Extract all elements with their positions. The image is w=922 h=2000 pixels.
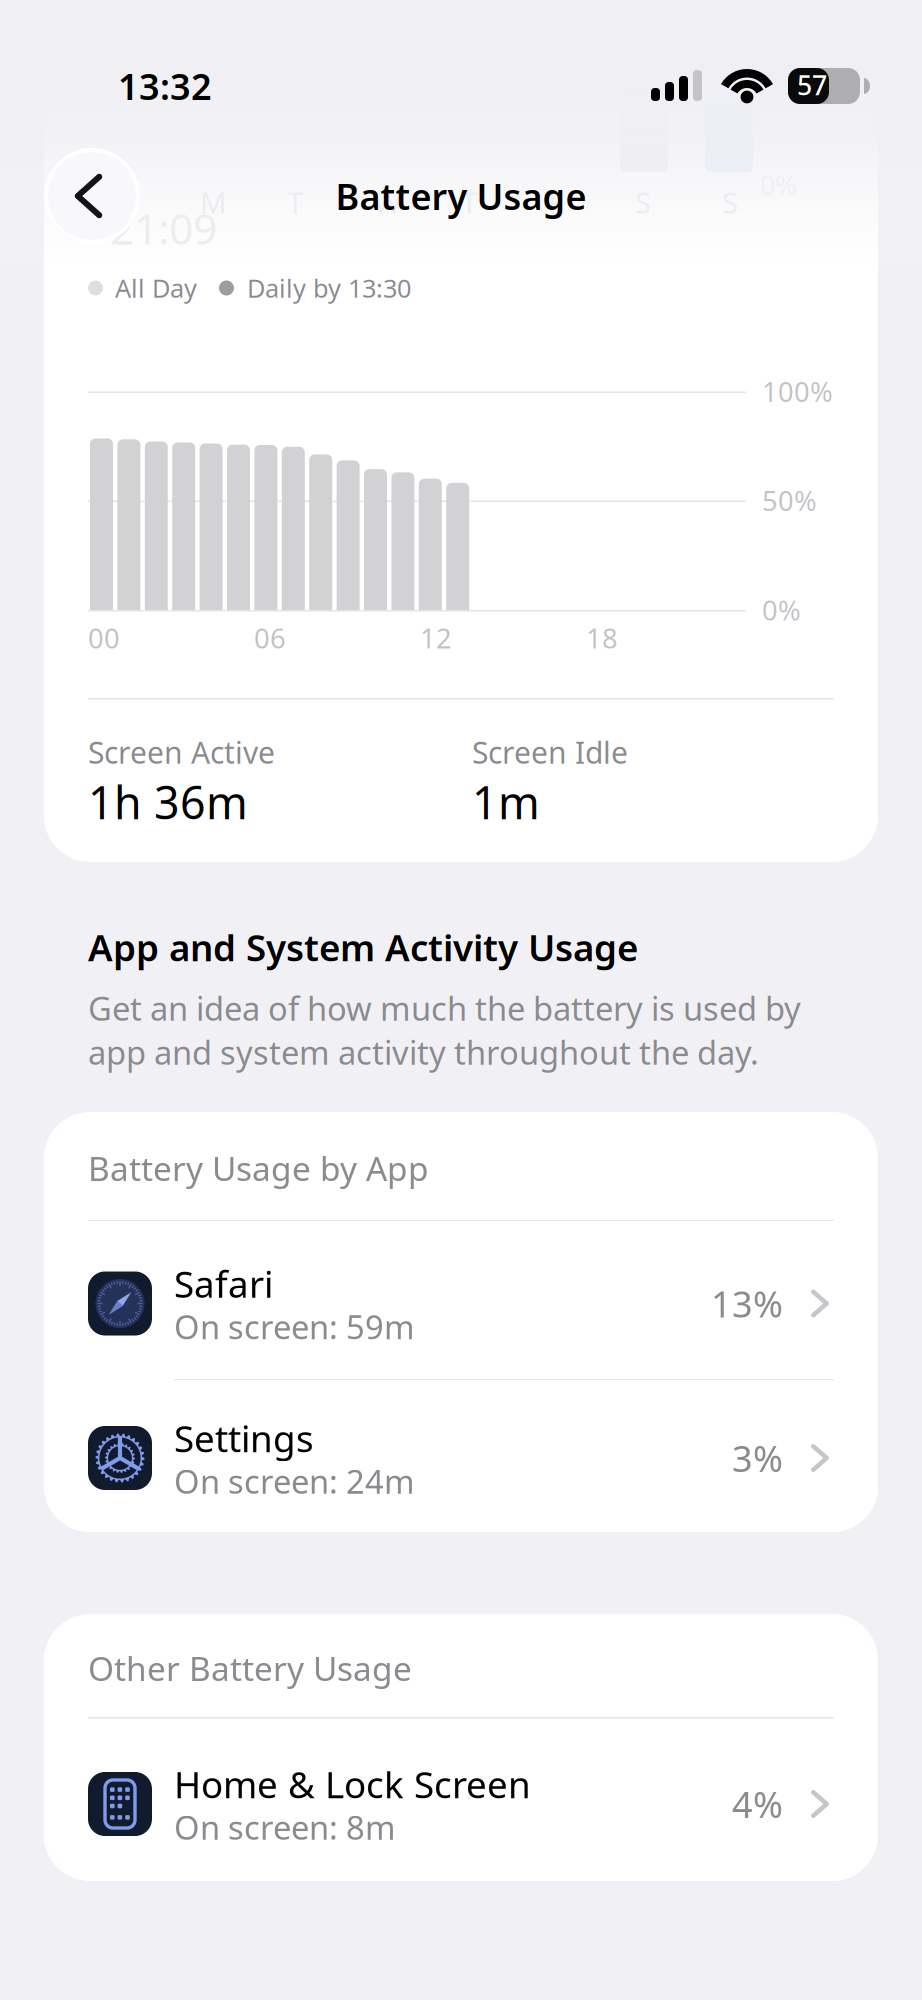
staticText: M	[200, 182, 227, 222]
staticText: S	[722, 182, 738, 222]
staticText: 12	[420, 619, 452, 657]
button[interactable]: Back	[44, 148, 140, 244]
staticText: Safari	[174, 1258, 273, 1308]
staticText: 57	[797, 67, 827, 103]
staticText: 100%	[762, 373, 833, 410]
staticText: Daily by 13:30	[247, 271, 411, 305]
staticText: 13%	[711, 1279, 783, 1328]
staticText: app and system activity throughout the d…	[88, 1030, 759, 1074]
staticText: W	[374, 182, 401, 222]
staticText: 21:09	[110, 199, 217, 257]
staticText: 0%	[760, 167, 797, 203]
staticText: T	[287, 182, 303, 222]
staticText: Home & Lock Screen	[174, 1759, 531, 1809]
staticText: Settings	[174, 1413, 314, 1463]
button[interactable]: Safari	[44, 1221, 878, 1379]
staticText: 13:32	[118, 61, 212, 110]
staticText: On screen: 8m	[174, 1805, 396, 1849]
staticText: All Day	[115, 271, 197, 305]
staticText: Screen Idle	[472, 732, 628, 772]
staticText: 1h 36m	[88, 772, 248, 832]
staticText: Battery Usage by App	[88, 1145, 429, 1191]
staticText: 3%	[732, 1433, 783, 1482]
staticText: 00	[88, 619, 120, 657]
staticText: 0%	[762, 591, 801, 629]
staticText: Other Battery Usage	[88, 1645, 412, 1691]
staticText: Screen Active	[88, 732, 275, 772]
staticText: App and System Activity Usage	[88, 922, 638, 972]
staticText: On screen: 59m	[174, 1304, 415, 1349]
staticText: 4%	[732, 1779, 783, 1828]
staticText: 1m	[472, 772, 540, 832]
button[interactable]: Settings	[44, 1380, 878, 1532]
staticText: T	[461, 182, 477, 222]
staticText: On screen: 24m	[174, 1459, 415, 1503]
staticText: 06	[254, 619, 286, 657]
staticText: 50%	[762, 482, 817, 519]
staticText: F	[548, 182, 563, 222]
staticText: Get an idea of how much the battery is u…	[88, 986, 801, 1030]
button[interactable]: Home & Lock Screen	[44, 1719, 878, 1899]
staticText: Battery Usage	[335, 171, 586, 220]
staticText: S	[635, 182, 651, 222]
staticText: 18	[586, 619, 618, 657]
